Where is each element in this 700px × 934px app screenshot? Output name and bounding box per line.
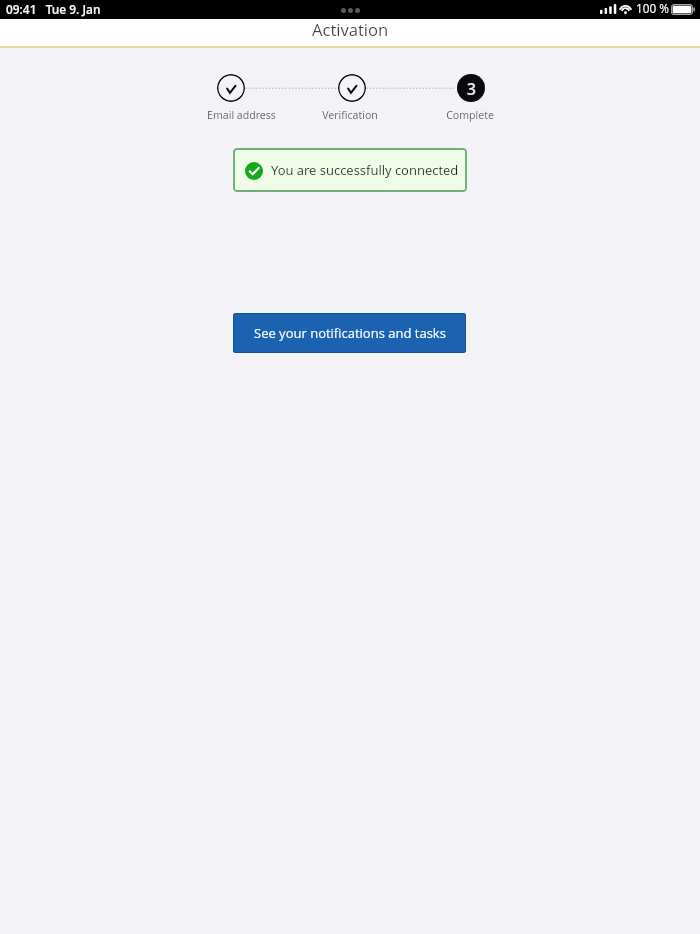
- staticText: Verification: [322, 108, 378, 122]
- staticText: 3: [467, 78, 476, 99]
- staticText: 09:41 Tue 9. Jan: [6, 1, 101, 17]
- staticText: You are successfully connected: [271, 161, 459, 179]
- staticText: Activation: [312, 18, 389, 41]
- staticText: Email address: [207, 108, 276, 122]
- button[interactable]: You are successfully connected: [233, 148, 467, 192]
- button[interactable]: Step 3, Complete: [457, 74, 485, 102]
- button[interactable]: See your notifications and tasks: [233, 313, 466, 353]
- staticText: 100 %: [636, 0, 670, 16]
- staticText: Complete: [446, 108, 494, 122]
- button[interactable]: Verification step completed: [338, 74, 366, 102]
- staticText: See your notifications and tasks: [254, 324, 446, 342]
- button[interactable]: Email address step completed: [217, 74, 245, 102]
